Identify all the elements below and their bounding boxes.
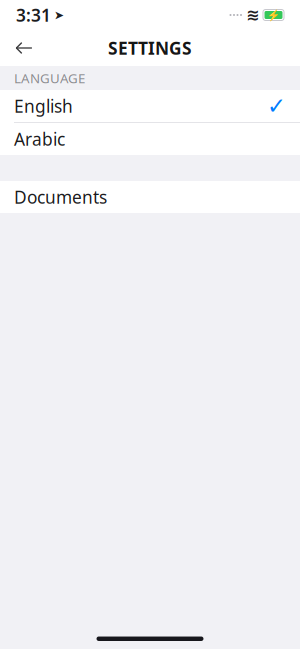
staticText: 3:31 [16, 3, 51, 26]
staticText: ✓ [267, 93, 286, 119]
staticText: ≋ [246, 6, 259, 24]
button[interactable]: Back [2, 31, 46, 65]
staticText: Arabic [14, 127, 65, 150]
staticText: SETTINGS [108, 36, 192, 59]
button[interactable]: Documents [0, 181, 300, 213]
staticText: English [14, 94, 73, 117]
staticText: ⚡ [267, 9, 280, 21]
button[interactable]: Arabic [0, 123, 300, 155]
staticText: Documents [14, 185, 107, 208]
staticText: LANGUAGE [14, 69, 85, 87]
button[interactable]: English [0, 90, 300, 122]
staticText: ➤ [54, 8, 64, 22]
